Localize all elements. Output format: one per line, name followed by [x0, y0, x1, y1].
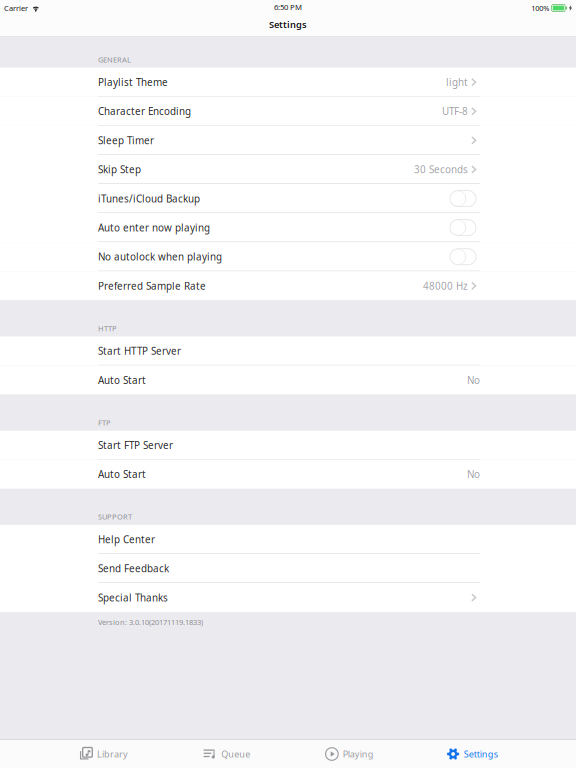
staticText: Auto enter now playing [98, 221, 210, 234]
staticText: 30 Seconds [414, 163, 468, 176]
button[interactable]: Playing [288, 740, 411, 768]
staticText: Sleep Timer [98, 134, 154, 147]
staticText: Preferred Sample Rate [98, 279, 206, 292]
staticText: Library [97, 748, 128, 760]
button[interactable]: iTunes/iCloud Backup [0, 184, 576, 213]
staticText: Special Thanks [98, 591, 168, 604]
staticText: Playing [343, 748, 374, 760]
button[interactable]: Help Center [0, 525, 576, 554]
button[interactable]: Queue [165, 740, 288, 768]
button[interactable]: Start HTTP Server [0, 336, 576, 365]
staticText: SUPPORT [98, 512, 132, 522]
button[interactable]: Character Encoding [0, 97, 576, 126]
staticText: Carrier [4, 3, 28, 13]
button[interactable]: No autolock when playing [0, 242, 576, 271]
staticText: No [467, 467, 480, 481]
staticText: Settings [269, 18, 307, 31]
staticText: Queue [221, 748, 250, 760]
button[interactable]: Library [42, 740, 165, 768]
staticText: Help Center [98, 533, 155, 546]
staticText: light [446, 75, 468, 89]
staticText: 100% [531, 3, 549, 13]
staticText: Settings [464, 748, 498, 760]
button[interactable]: Sleep Timer [0, 126, 576, 155]
staticText: No autolock when playing [98, 250, 222, 263]
staticText: No [467, 373, 480, 387]
button[interactable]: Skip Step [0, 155, 576, 184]
staticText: iTunes/iCloud Backup [98, 192, 200, 205]
staticText: FTP [98, 417, 111, 428]
staticText: HTTP [98, 323, 117, 333]
button[interactable]: Special Thanks [0, 583, 576, 612]
button[interactable]: Playlist Theme [0, 68, 576, 97]
staticText: Version: 3.0.10(20171119.1833) [98, 617, 203, 627]
button[interactable]: Auto Start [0, 460, 576, 489]
staticText: GENERAL [98, 54, 131, 65]
staticText: Skip Step [98, 163, 141, 176]
staticText: Start FTP Server [98, 438, 173, 452]
button[interactable]: Send Feedback [0, 554, 576, 583]
staticText: 6:50 PM [274, 2, 302, 12]
button[interactable]: Auto enter now playing [0, 213, 576, 242]
staticText: UTF-8 [442, 104, 468, 118]
staticText: Auto Start [98, 373, 146, 387]
button[interactable]: Auto Start [0, 365, 576, 395]
button[interactable]: Preferred Sample Rate [0, 271, 576, 300]
staticText: Playlist Theme [98, 75, 168, 89]
button[interactable]: Settings [411, 740, 534, 768]
staticText: 48000 Hz [423, 279, 468, 292]
staticText: Send Feedback [98, 562, 169, 575]
staticText: Start HTTP Server [98, 344, 181, 358]
staticText: Character Encoding [98, 104, 191, 118]
button[interactable]: Start FTP Server [0, 431, 576, 460]
staticText: Auto Start [98, 467, 146, 481]
